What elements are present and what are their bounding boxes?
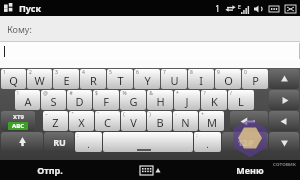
staticText: 3 bbox=[55, 69, 58, 76]
staticText: Y bbox=[144, 73, 151, 88]
button[interactable]: % bbox=[120, 90, 146, 110]
staticText: S bbox=[50, 94, 57, 109]
staticText: : bbox=[196, 132, 198, 139]
staticText: . bbox=[206, 138, 209, 150]
staticText: & bbox=[149, 90, 153, 97]
staticText: 0 bbox=[244, 69, 247, 76]
button[interactable]: Up bbox=[269, 69, 299, 89]
staticText: P bbox=[252, 73, 259, 88]
button[interactable]: 0 bbox=[242, 69, 268, 89]
button[interactable]: 2 bbox=[27, 69, 52, 89]
staticText: ! bbox=[17, 90, 19, 97]
button[interactable]: " bbox=[69, 111, 94, 131]
staticText: . bbox=[87, 138, 90, 150]
button[interactable]: Backspace bbox=[230, 111, 268, 131]
button[interactable]: 4 bbox=[80, 69, 106, 89]
button[interactable]: $ bbox=[93, 90, 119, 110]
button[interactable] bbox=[0, 42, 300, 60]
button[interactable]: Меню bbox=[200, 160, 300, 180]
button[interactable]: : bbox=[75, 132, 102, 152]
staticText: X bbox=[78, 115, 85, 130]
staticText: сотовик bbox=[273, 160, 296, 168]
button[interactable]: XT9 ABC bbox=[1, 111, 35, 131]
staticText: RU bbox=[53, 136, 66, 148]
button[interactable]: Left bbox=[269, 111, 299, 131]
button[interactable]: & bbox=[147, 90, 173, 110]
button[interactable]: 9 bbox=[215, 69, 241, 89]
staticText: O bbox=[224, 73, 233, 88]
staticText: 9 bbox=[217, 69, 220, 76]
button[interactable]: 7 bbox=[161, 69, 187, 89]
staticText: E bbox=[63, 73, 70, 88]
staticText: K bbox=[211, 94, 218, 109]
button[interactable]: Close bbox=[285, 5, 296, 13]
staticText: 6 bbox=[136, 69, 139, 76]
staticText: ) bbox=[149, 111, 151, 118]
staticText: F bbox=[103, 94, 109, 109]
button[interactable]: ( bbox=[121, 111, 146, 131]
staticText: Отпр. bbox=[37, 164, 63, 176]
button[interactable]: Language RU bbox=[44, 132, 74, 152]
button[interactable]: + bbox=[199, 111, 224, 131]
staticText: 5 bbox=[109, 69, 112, 76]
staticText: ABC bbox=[12, 122, 24, 130]
button[interactable]: ? bbox=[201, 90, 227, 110]
staticText: J bbox=[185, 94, 189, 109]
staticText: Q bbox=[9, 73, 18, 88]
button[interactable]: Кому: bbox=[0, 16, 300, 42]
button[interactable]: ) bbox=[147, 111, 172, 131]
staticText: T bbox=[117, 73, 124, 88]
staticText: ? bbox=[203, 90, 206, 97]
button[interactable]: Отпр. bbox=[0, 160, 100, 180]
staticText: C bbox=[104, 115, 111, 130]
button[interactable]: Numbers and symbols bbox=[222, 132, 268, 152]
staticText: E bbox=[238, 4, 241, 11]
staticText: + bbox=[201, 111, 204, 118]
staticText: ( bbox=[123, 111, 125, 118]
button[interactable]: Down bbox=[269, 132, 299, 152]
staticText: V bbox=[130, 115, 137, 130]
staticText: G bbox=[129, 94, 138, 109]
button[interactable]: 3 bbox=[53, 69, 79, 89]
staticText: H bbox=[156, 94, 165, 109]
button[interactable]: Right bbox=[269, 90, 299, 110]
button[interactable]: ~ bbox=[43, 111, 68, 131]
staticText: 12# bbox=[237, 136, 254, 148]
staticText: $ bbox=[95, 90, 98, 97]
button[interactable]: ' bbox=[95, 111, 120, 131]
staticText: N bbox=[181, 115, 190, 130]
staticText: @ bbox=[43, 90, 48, 97]
staticText: U bbox=[170, 73, 179, 88]
staticText: 7 bbox=[163, 69, 166, 76]
button[interactable] bbox=[103, 132, 193, 152]
staticText: # bbox=[69, 90, 73, 97]
button[interactable]: 8 bbox=[188, 69, 214, 89]
staticText: 8 bbox=[190, 69, 193, 76]
button[interactable]: 5 bbox=[107, 69, 133, 89]
staticText: M bbox=[207, 115, 217, 130]
staticText: % bbox=[122, 90, 127, 97]
button[interactable]: - bbox=[173, 111, 198, 131]
button[interactable]: 6 bbox=[134, 69, 160, 89]
staticText: B bbox=[156, 115, 164, 130]
button[interactable]: @ bbox=[41, 90, 66, 110]
button[interactable]: : bbox=[194, 132, 221, 152]
staticText: Пуск bbox=[19, 2, 41, 14]
staticText: I bbox=[199, 73, 203, 88]
button[interactable]: ! bbox=[15, 90, 40, 110]
button[interactable]: Keyboard bbox=[100, 160, 200, 180]
staticText: - bbox=[175, 111, 177, 118]
button[interactable]: * bbox=[174, 90, 200, 110]
staticText: Меню bbox=[236, 164, 264, 176]
staticText: " bbox=[71, 111, 74, 118]
button[interactable]: # bbox=[67, 90, 92, 110]
staticText: ~ bbox=[45, 111, 48, 118]
staticText: W bbox=[34, 73, 45, 88]
button[interactable]: / bbox=[228, 90, 254, 110]
staticText: : bbox=[77, 132, 79, 139]
staticText: D bbox=[75, 94, 84, 109]
staticText: 1 bbox=[3, 69, 6, 76]
staticText: A bbox=[24, 94, 32, 109]
button[interactable]: 1 bbox=[1, 69, 26, 89]
button[interactable]: Shift bbox=[1, 132, 43, 152]
